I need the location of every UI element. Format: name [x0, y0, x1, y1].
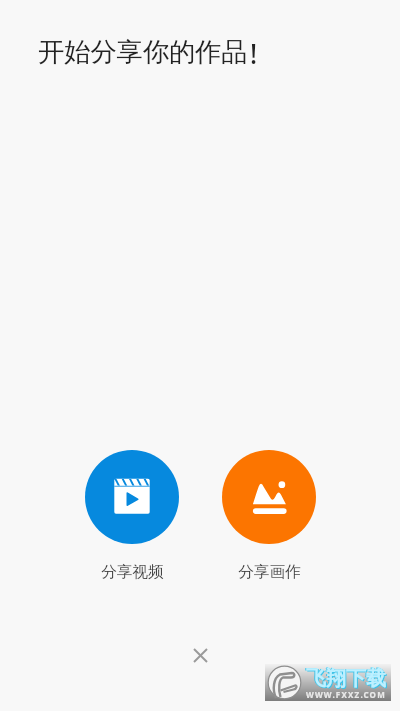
button[interactable]: 分享视频: [85, 450, 179, 582]
staticText: 分享视频: [101, 562, 164, 582]
staticText: 开始分享你的作品: [38, 36, 248, 69]
staticText: 分享画作: [238, 562, 301, 582]
button[interactable]: 分享画作: [222, 450, 316, 582]
staticText: WWW.FXXZ.COM: [306, 689, 386, 700]
staticText: 飞翔下载: [305, 666, 385, 691]
button[interactable]: Close: [180, 635, 220, 675]
staticText: 飞翔下载: [306, 666, 386, 691]
staticText: 飞翔下载: [307, 667, 387, 692]
staticText: !: [250, 36, 258, 72]
